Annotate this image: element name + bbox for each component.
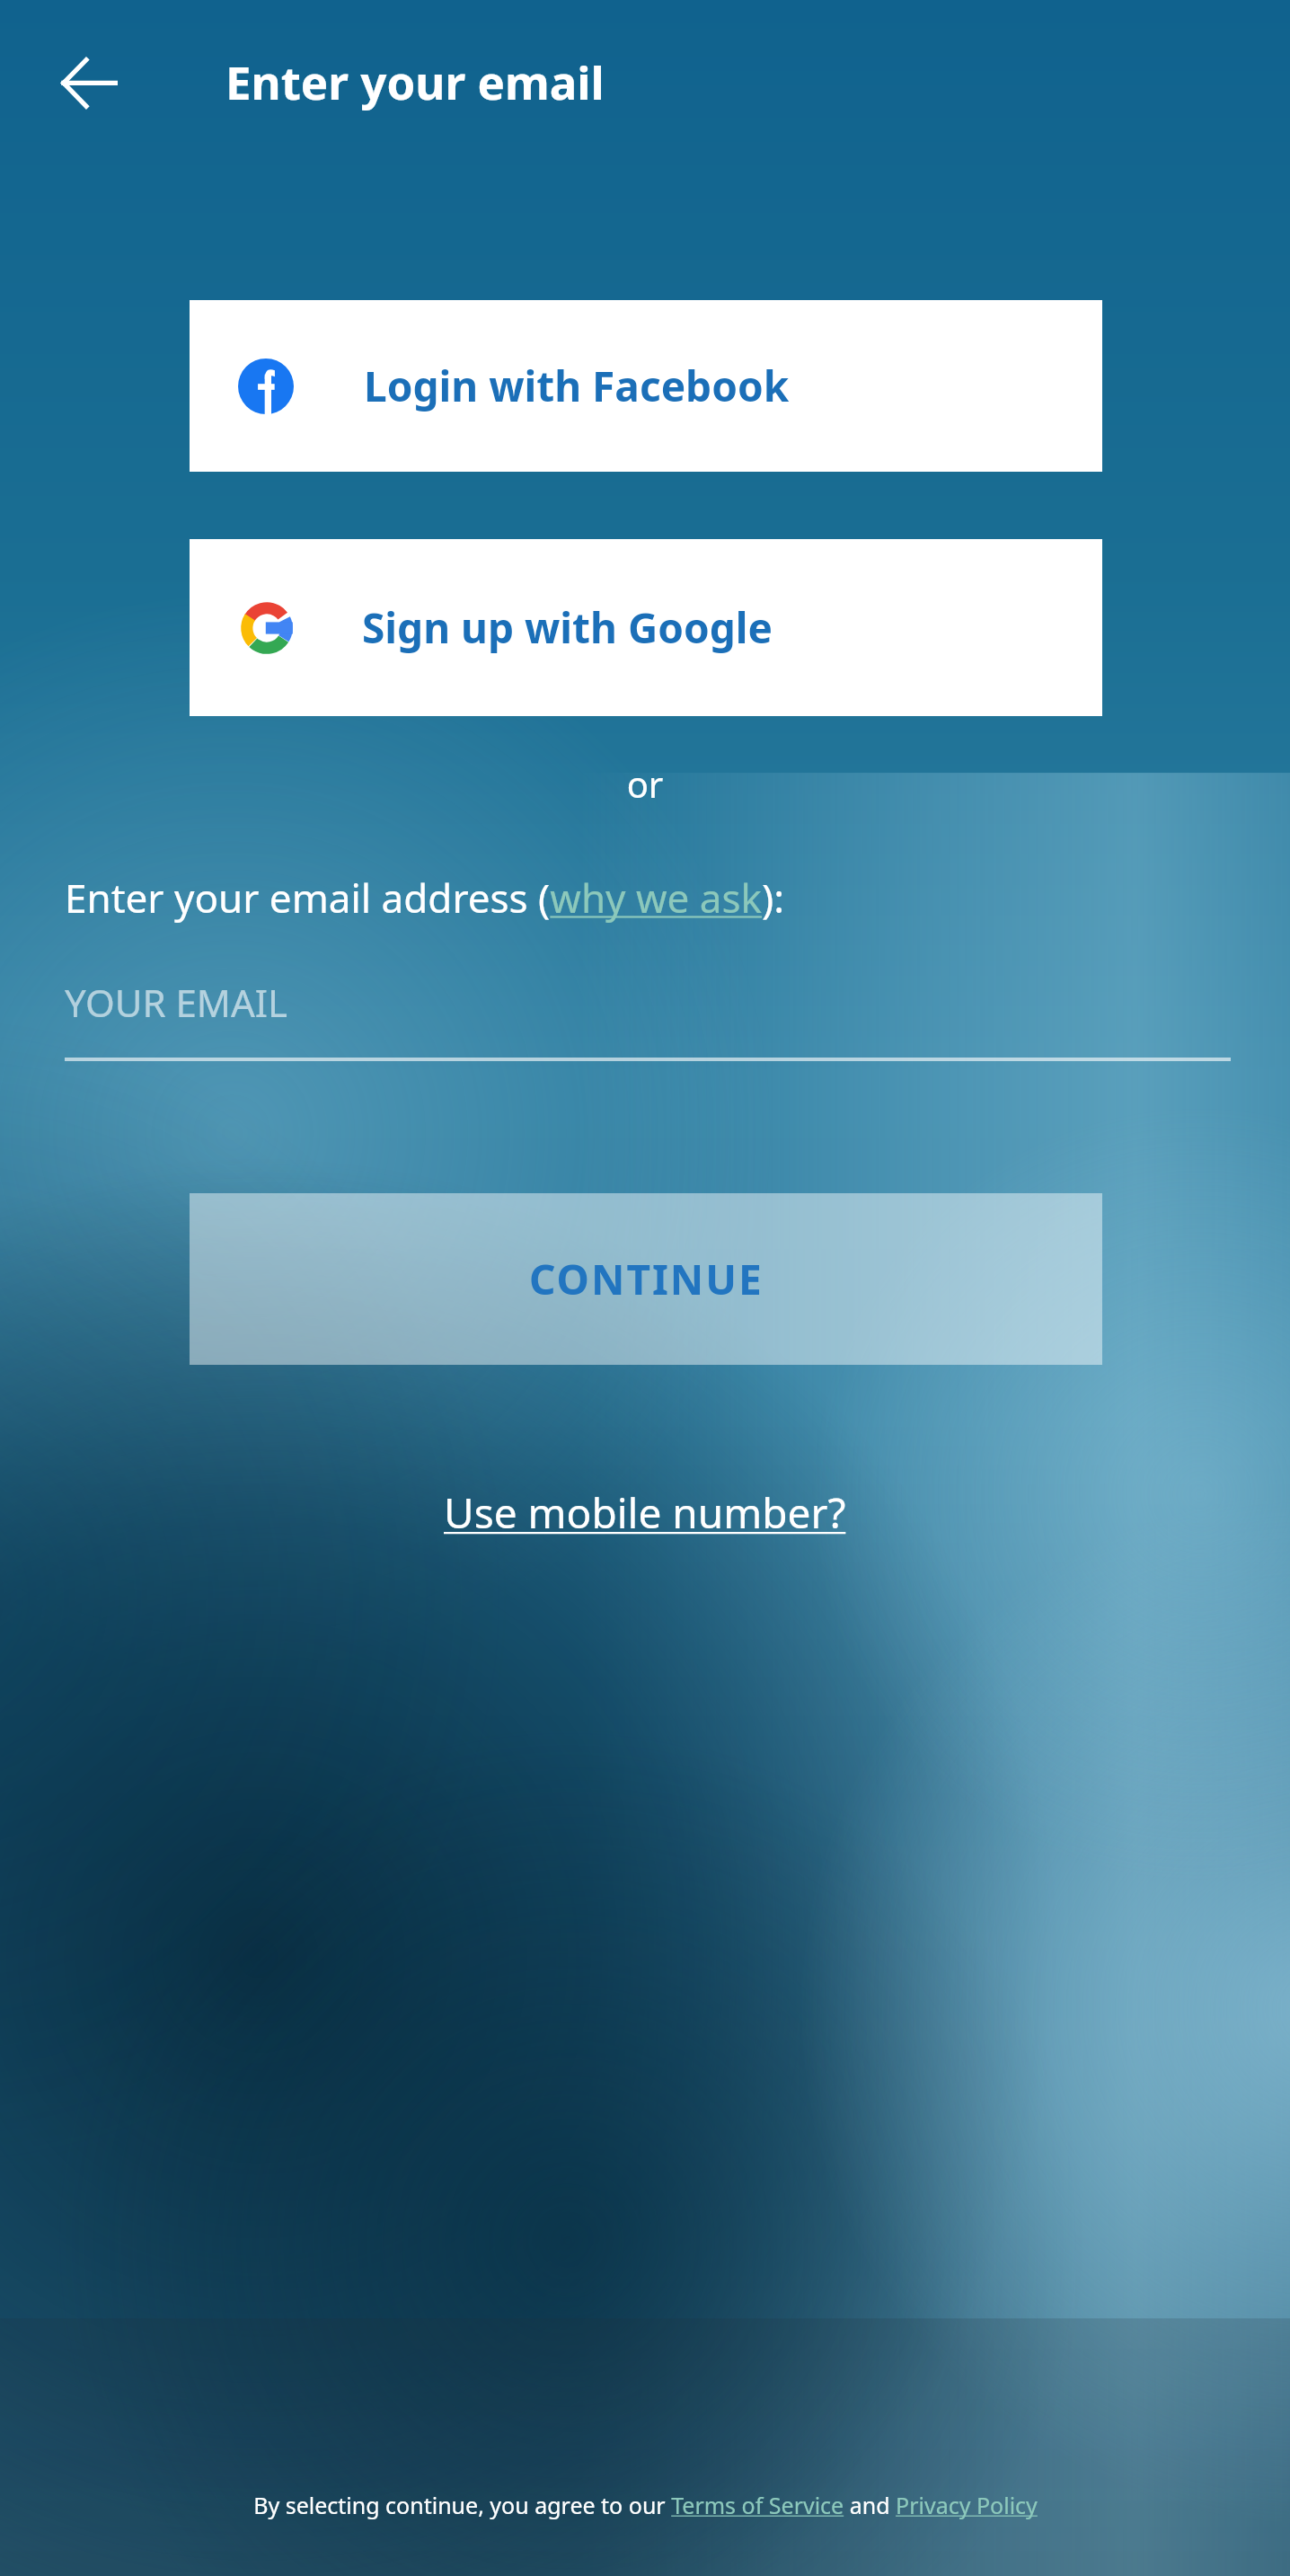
staticText: YOUR EMAIL bbox=[65, 977, 288, 1028]
staticText: or bbox=[0, 759, 1290, 808]
button[interactable]: CONTINUE bbox=[190, 1193, 1102, 1365]
staticText: CONTINUE bbox=[529, 1251, 764, 1307]
staticText: Enter your email bbox=[225, 50, 605, 112]
staticText: Login with Facebook bbox=[364, 358, 790, 414]
button[interactable]: By selecting continue, you agree to our … bbox=[253, 2490, 1038, 2520]
button[interactable]: Use mobile number? bbox=[444, 1484, 846, 1541]
button[interactable]: YOUR EMAIL bbox=[65, 977, 1231, 1061]
button[interactable]: Login with Facebook bbox=[190, 300, 1102, 472]
button[interactable]: Sign up with Google bbox=[190, 539, 1102, 716]
button[interactable]: Enter your email address (why we ask): bbox=[65, 871, 785, 925]
staticText: Sign up with Google bbox=[362, 599, 773, 656]
button[interactable]: Back bbox=[41, 39, 137, 134]
